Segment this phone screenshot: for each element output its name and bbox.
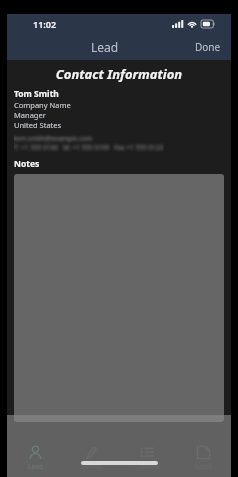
- staticText: tom.smith@example.com: [14, 134, 93, 143]
- staticText: T: +1 555 0100 M: +1 555 0199 Fax +1 555…: [14, 143, 164, 152]
- button[interactable]: Content: [119, 441, 175, 477]
- other: Survey: [84, 445, 99, 460]
- staticText: Lead: [28, 462, 43, 471]
- button[interactable]: Survey: [63, 441, 119, 477]
- staticText: 11:02: [33, 18, 57, 30]
- other: Lead: [28, 445, 43, 460]
- button[interactable]: Lead: [7, 441, 63, 477]
- staticText: Content: [135, 462, 160, 471]
- staticText: Manager: [14, 110, 46, 120]
- other: Notes: [196, 445, 211, 460]
- other: Content: [140, 445, 155, 460]
- staticText: Company Name: [14, 100, 71, 110]
- staticText: Notes: [14, 158, 40, 170]
- button[interactable]: Done: [185, 36, 231, 58]
- staticText: Contact Information: [14, 65, 224, 83]
- staticText: Tom Smith: [14, 88, 59, 100]
- staticText: Done: [195, 40, 221, 54]
- staticText: Lead: [91, 39, 119, 55]
- staticText: United States: [14, 120, 62, 130]
- button[interactable]: [14, 174, 224, 422]
- staticText: Survey: [81, 462, 102, 471]
